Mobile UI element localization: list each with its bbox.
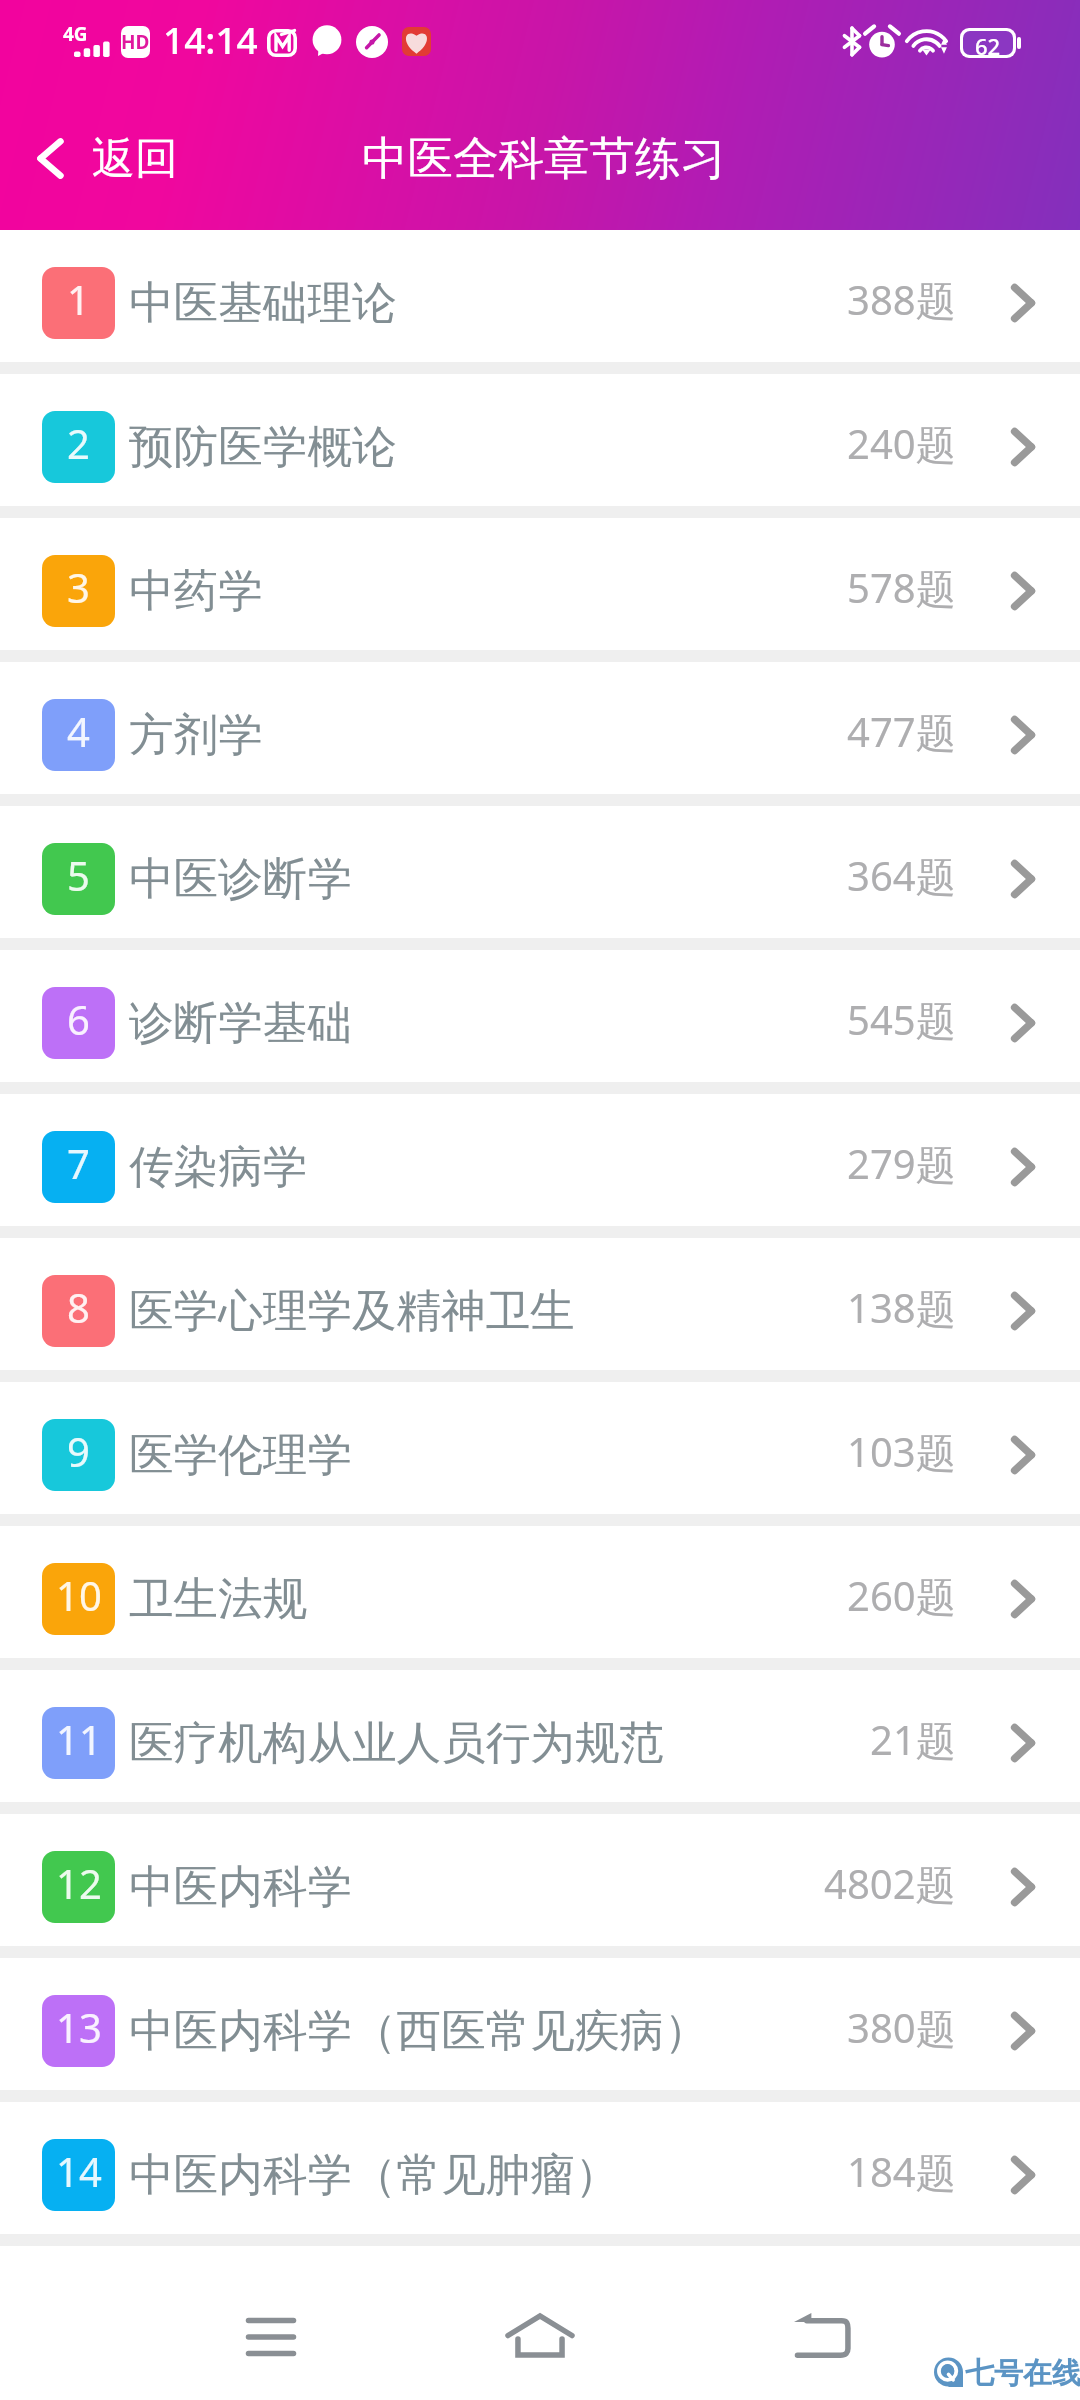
button[interactable]: 13 (0, 1958, 1080, 2090)
button[interactable]: 4 (0, 662, 1080, 794)
staticText: 中医全科章节练习 (362, 130, 726, 187)
staticText: 6 (67, 992, 90, 1046)
staticText: 方剂学 (129, 707, 847, 763)
staticText: 578题 (847, 560, 956, 615)
staticText: 103题 (847, 1424, 956, 1479)
staticText: 388题 (847, 272, 956, 327)
staticText: 477题 (847, 704, 956, 759)
staticText: 12 (56, 1856, 102, 1910)
staticText: 中医内科学（西医常见疾病） (129, 2003, 847, 2059)
staticText: 医学心理学及精神卫生 (129, 1283, 847, 1339)
button[interactable]: Recents (216, 2282, 326, 2392)
button[interactable]: 12 (0, 1814, 1080, 1946)
staticText: 中医诊断学 (129, 851, 847, 907)
staticText: 62 (975, 31, 1001, 55)
staticText: 医学伦理学 (129, 1427, 847, 1483)
staticText: 中医内科学 (129, 1859, 824, 1915)
staticText: 2 (67, 416, 90, 470)
staticText: 返回 (92, 132, 178, 186)
staticText: 1 (67, 272, 90, 326)
button[interactable]: 6 (0, 950, 1080, 1082)
button[interactable]: 1 (0, 230, 1080, 362)
staticText: 380题 (847, 2000, 956, 2055)
button[interactable]: 9 (0, 1382, 1080, 1514)
staticText: 260题 (847, 1568, 956, 1623)
staticText: 医疗机构从业人员行为规范 (129, 1715, 870, 1771)
staticText: 七号在线 (965, 2355, 1080, 2392)
staticText: 279题 (847, 1136, 956, 1191)
staticText: 11 (56, 1712, 102, 1766)
staticText: 4G (63, 21, 88, 47)
staticText: 14:14 (163, 14, 258, 64)
button[interactable]: Home (485, 2280, 595, 2390)
staticText: 9 (67, 1424, 90, 1478)
staticText: 545题 (847, 992, 956, 1047)
staticText: 中药学 (129, 563, 847, 619)
staticText: 中医内科学（常见肿瘤） (129, 2147, 847, 2203)
staticText: HD (121, 29, 150, 55)
staticText: 4 (67, 704, 90, 758)
staticText: 10 (56, 1568, 102, 1622)
staticText: 传染病学 (129, 1139, 847, 1195)
button[interactable]: 10 (0, 1526, 1080, 1658)
staticText: 预防医学概论 (129, 419, 847, 475)
button[interactable]: 2 (0, 374, 1080, 506)
button[interactable]: 3 (0, 518, 1080, 650)
button[interactable]: 7 (0, 1094, 1080, 1226)
button[interactable]: Back (768, 2283, 878, 2393)
button[interactable]: 14 (0, 2102, 1080, 2234)
button[interactable]: 8 (0, 1238, 1080, 1370)
staticText: 138题 (847, 1280, 956, 1335)
staticText: 3 (67, 560, 90, 614)
staticText: 4802题 (824, 1856, 956, 1911)
staticText: 14 (56, 2144, 102, 2198)
staticText: 卫生法规 (129, 1571, 847, 1627)
staticText: 诊断学基础 (129, 995, 847, 1051)
button[interactable]: 返回 Back (0, 87, 208, 230)
staticText: 184题 (847, 2144, 956, 2199)
staticText: 5 (67, 848, 90, 902)
staticText: 240题 (847, 416, 956, 471)
staticText: 364题 (847, 848, 956, 903)
button[interactable]: 11 (0, 1670, 1080, 1802)
staticText: 中医基础理论 (129, 275, 847, 331)
staticText: 13 (56, 2000, 102, 2054)
staticText: 7 (67, 1136, 90, 1190)
staticText: 21题 (870, 1712, 956, 1767)
staticText: 8 (67, 1280, 90, 1334)
button[interactable]: 5 (0, 806, 1080, 938)
